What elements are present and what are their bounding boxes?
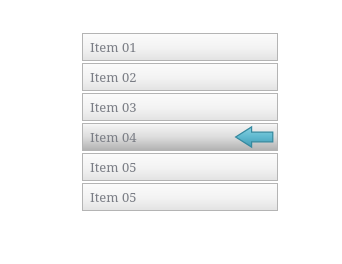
button[interactable]: Item 05 [82,183,278,211]
other: Selected item indicator [234,125,274,149]
button[interactable]: Item 04 [82,123,278,151]
staticText: Item 05 [90,158,137,176]
button[interactable]: Item 01 [82,33,278,61]
button[interactable]: Item 05 [82,153,278,181]
staticText: Item 01 [90,38,137,56]
staticText: Item 03 [90,98,137,116]
staticText: Item 02 [90,68,137,86]
button[interactable]: Item 03 [82,93,278,121]
staticText: Item 04 [90,128,137,146]
staticText: Item 05 [90,188,137,206]
button[interactable]: Item 02 [82,63,278,91]
